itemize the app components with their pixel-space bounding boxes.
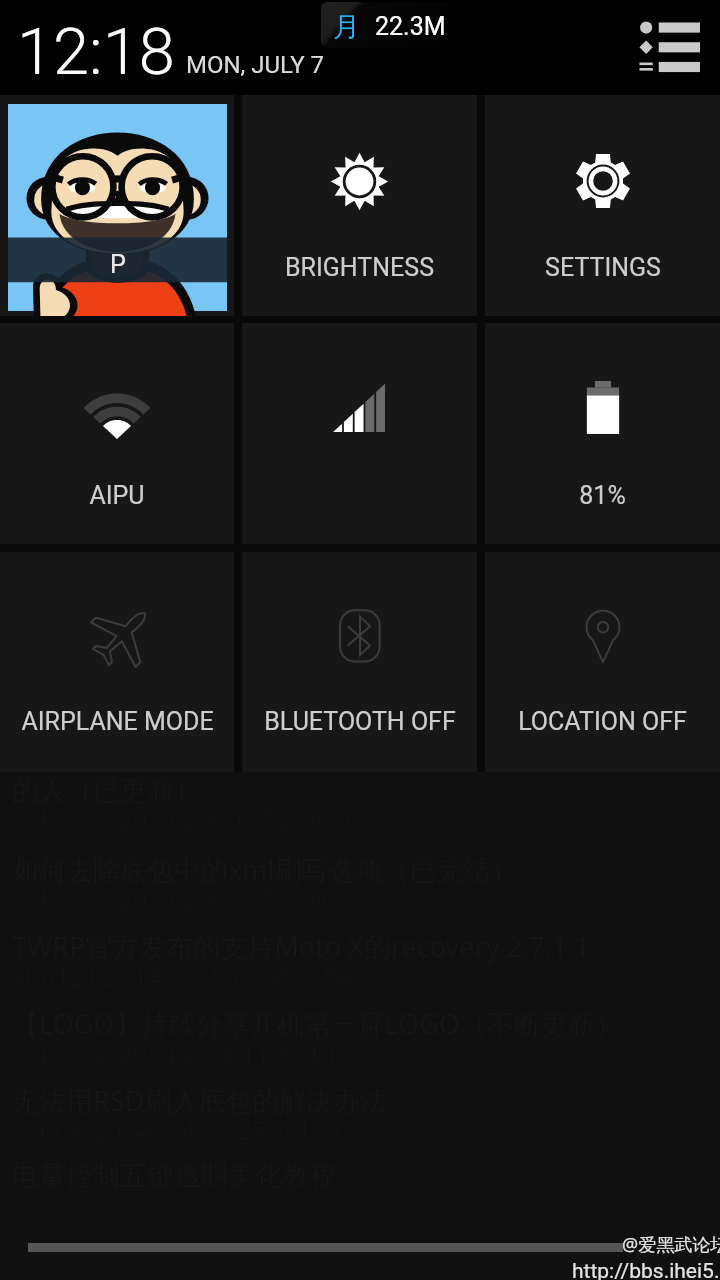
staticText: AIPU bbox=[89, 481, 145, 510]
staticText: SETTINGS bbox=[545, 253, 661, 282]
staticText: 月 bbox=[333, 10, 360, 44]
staticText: 81% bbox=[579, 481, 626, 510]
staticText: P bbox=[110, 250, 126, 279]
button[interactable]: BRIGHTNESS bbox=[242, 95, 477, 316]
staticText: 22.3M bbox=[375, 12, 446, 41]
staticText: http://bbs.ihei5.com bbox=[572, 1259, 720, 1280]
staticText: @爱黑武论坛 bbox=[622, 1232, 720, 1257]
button[interactable]: AIPU bbox=[0, 323, 234, 544]
button[interactable]: BLUETOOTH OFF bbox=[242, 552, 477, 772]
button[interactable]: 月 bbox=[321, 2, 449, 48]
staticText: AIRPLANE MODE bbox=[21, 707, 214, 736]
staticText: LOCATION OFF bbox=[518, 707, 687, 736]
button[interactable]: 81% bbox=[485, 323, 720, 544]
staticText: MON, JULY 7 bbox=[186, 51, 325, 79]
staticText: 12:18 bbox=[17, 14, 175, 90]
staticText: BLUETOOTH OFF bbox=[264, 707, 456, 736]
button[interactable]: Notifications bbox=[637, 19, 700, 77]
button[interactable]: AIRPLANE MODE bbox=[0, 552, 234, 772]
button[interactable]: SETTINGS bbox=[485, 95, 720, 316]
staticText: BRIGHTNESS bbox=[285, 253, 434, 282]
button[interactable]: Mobile signal bbox=[242, 323, 477, 544]
button[interactable]: LOCATION OFF bbox=[485, 552, 720, 772]
button[interactable]: User profile bbox=[0, 95, 234, 316]
